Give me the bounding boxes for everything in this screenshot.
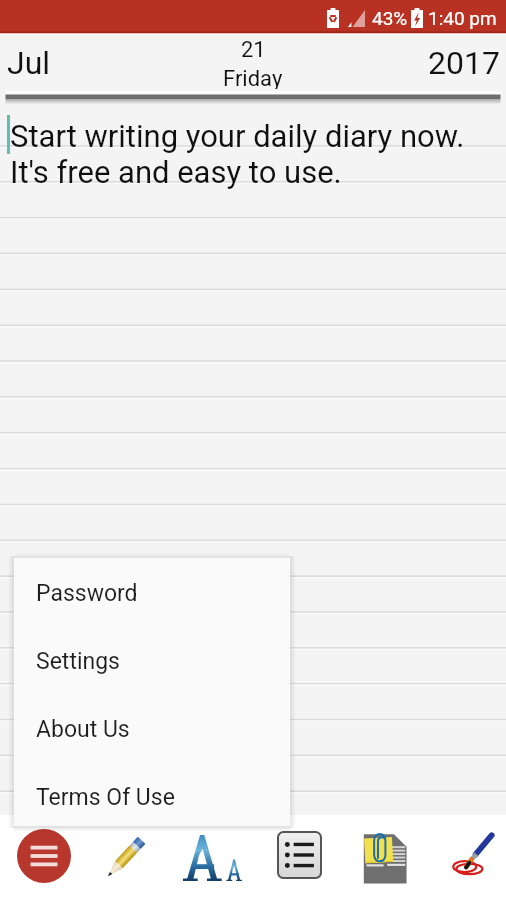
staticText: 1:40 pm <box>428 7 497 29</box>
staticText: 21 <box>241 37 266 63</box>
staticText: Jul <box>7 44 51 82</box>
staticText: 43% <box>372 7 408 29</box>
button[interactable]: List <box>277 831 322 879</box>
staticText: Friday <box>223 66 283 92</box>
button[interactable]: Attachment <box>362 830 407 884</box>
staticText: Password <box>36 580 138 607</box>
button[interactable]: About Us <box>14 694 290 762</box>
button[interactable]: Menu <box>17 829 71 883</box>
button[interactable]: Terms Of Use <box>14 762 290 830</box>
button[interactable]: Draw <box>446 830 498 882</box>
staticText: 2017 <box>428 44 500 82</box>
staticText: Terms Of Use <box>36 784 175 811</box>
button[interactable]: Password <box>14 558 290 626</box>
button[interactable]: Font <box>183 835 242 881</box>
staticText: Start writing your daily diary now. It's… <box>10 118 465 190</box>
button[interactable]: Settings <box>14 626 290 694</box>
staticText: About Us <box>36 716 130 743</box>
button[interactable]: Write <box>99 831 152 884</box>
staticText: Settings <box>36 648 120 675</box>
